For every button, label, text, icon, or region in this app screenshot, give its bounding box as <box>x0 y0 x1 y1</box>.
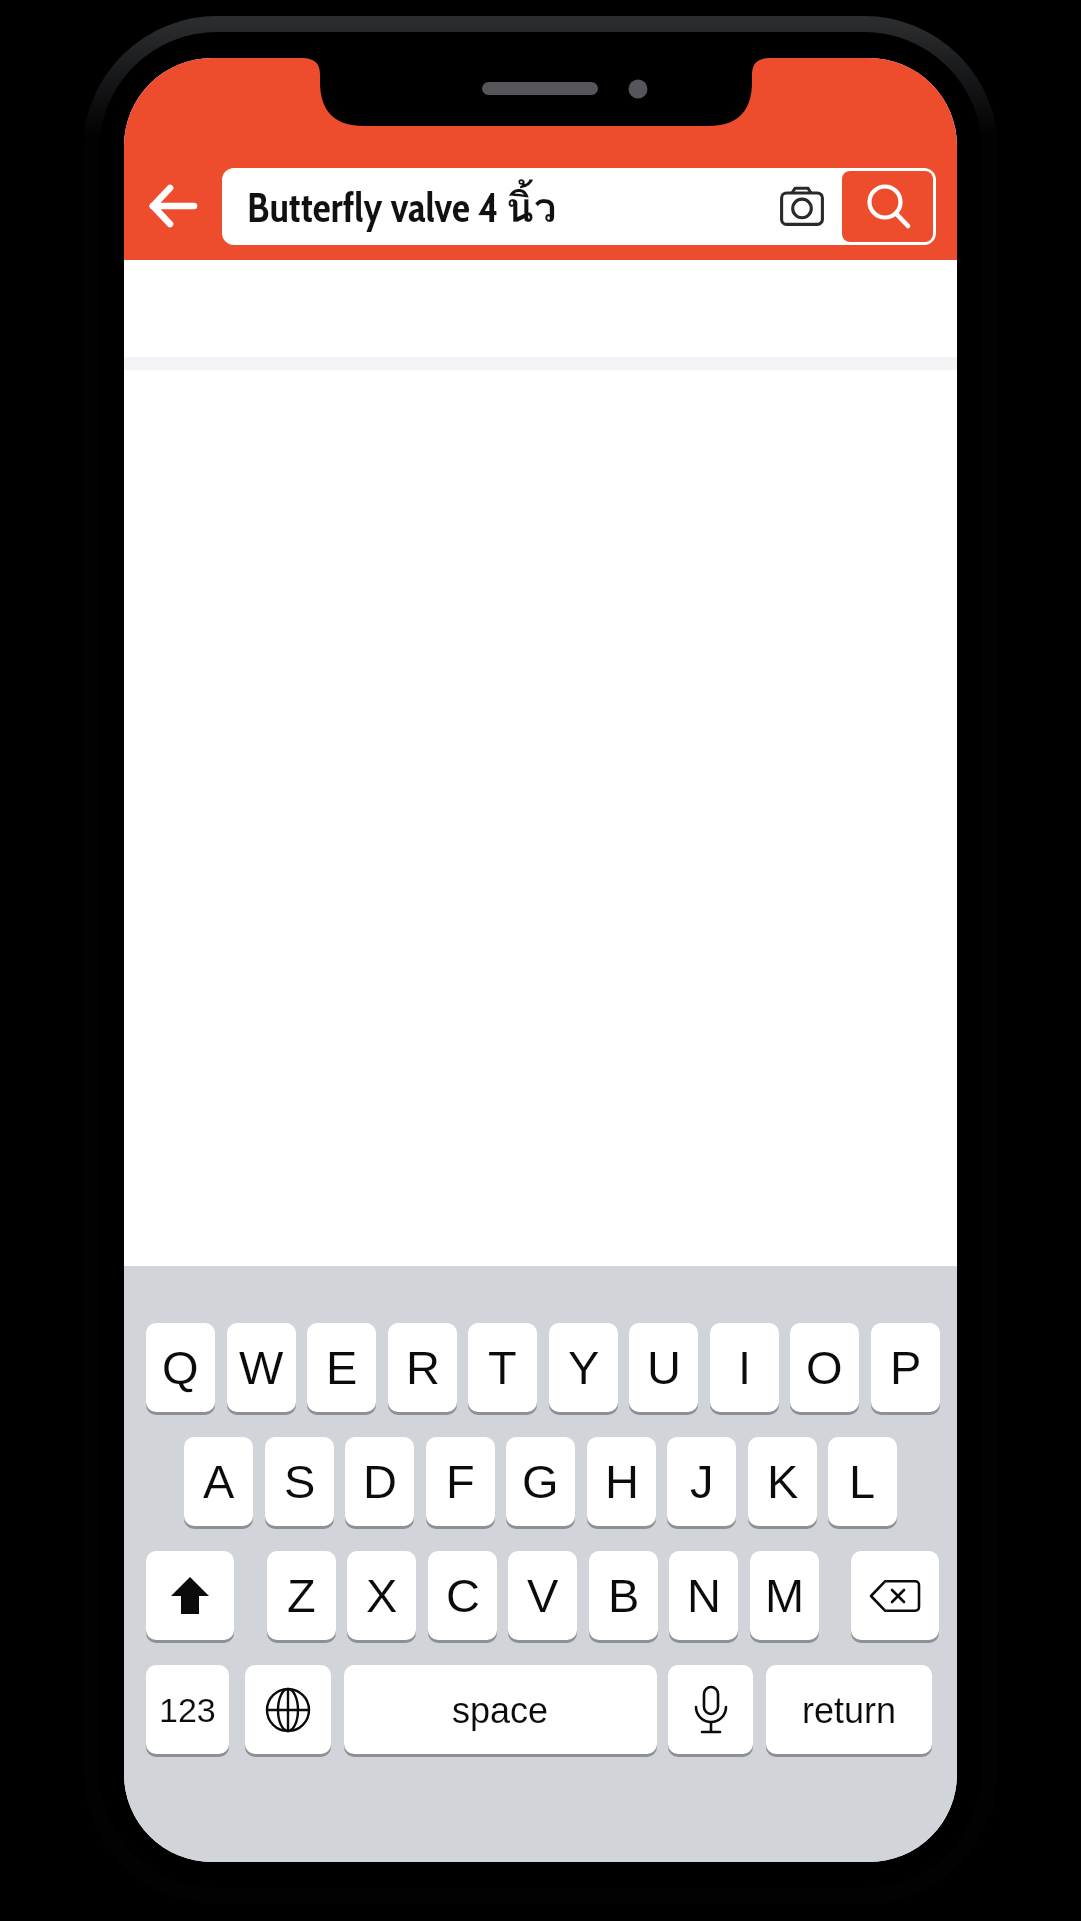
staticText: M <box>765 1569 805 1622</box>
button[interactable]: O <box>790 1323 859 1412</box>
button[interactable]: J <box>667 1437 736 1526</box>
button[interactable]: 123 <box>146 1665 229 1754</box>
staticText: A <box>203 1455 235 1508</box>
button[interactable]: Butterfly valve 4 นิ้ว <box>222 168 936 245</box>
staticText: H <box>605 1455 639 1508</box>
button[interactable] <box>768 176 836 236</box>
staticText: C <box>446 1569 480 1622</box>
staticText: U <box>647 1341 681 1394</box>
button[interactable]: A <box>184 1437 253 1526</box>
button[interactable]: K <box>748 1437 817 1526</box>
button[interactable]: U <box>629 1323 698 1412</box>
staticText: F <box>446 1455 475 1508</box>
staticText: Q <box>162 1341 199 1394</box>
staticText: I <box>738 1341 752 1394</box>
button[interactable]: Y <box>549 1323 618 1412</box>
staticText: return <box>802 1690 897 1730</box>
button[interactable]: S <box>265 1437 334 1526</box>
button[interactable]: I <box>710 1323 779 1412</box>
button[interactable] <box>132 164 214 248</box>
staticText: T <box>488 1341 517 1394</box>
button[interactable]: M <box>750 1551 819 1640</box>
button[interactable]: G <box>506 1437 575 1526</box>
button[interactable]: space <box>344 1665 657 1754</box>
staticText: 123 <box>159 1691 216 1729</box>
staticText: J <box>690 1455 714 1508</box>
button[interactable]: H <box>587 1437 656 1526</box>
button[interactable]: return <box>766 1665 932 1754</box>
staticText: D <box>363 1455 397 1508</box>
button[interactable] <box>851 1551 939 1640</box>
button[interactable]: R <box>388 1323 457 1412</box>
button[interactable]: N <box>669 1551 738 1640</box>
staticText: R <box>406 1341 440 1394</box>
button[interactable]: L <box>828 1437 897 1526</box>
staticText: L <box>849 1455 876 1508</box>
button[interactable] <box>245 1665 331 1754</box>
button[interactable]: Q <box>146 1323 215 1412</box>
staticText: X <box>366 1569 398 1622</box>
staticText: K <box>767 1455 799 1508</box>
button[interactable] <box>146 1551 234 1640</box>
staticText: V <box>527 1569 559 1622</box>
staticText: W <box>239 1341 284 1394</box>
staticText: P <box>890 1341 922 1394</box>
button[interactable] <box>668 1665 753 1754</box>
staticText: B <box>608 1569 640 1622</box>
button[interactable]: P <box>871 1323 940 1412</box>
staticText: E <box>326 1341 358 1394</box>
staticText: Butterfly valve 4 นิ้ว <box>247 175 557 239</box>
button[interactable] <box>842 171 933 242</box>
button[interactable]: B <box>589 1551 658 1640</box>
button[interactable]: X <box>347 1551 416 1640</box>
button[interactable]: D <box>345 1437 414 1526</box>
staticText: space <box>452 1690 549 1730</box>
staticText: Y <box>568 1341 600 1394</box>
button[interactable]: Z <box>267 1551 336 1640</box>
staticText: Z <box>287 1569 316 1622</box>
button[interactable]: V <box>508 1551 577 1640</box>
button[interactable]: T <box>468 1323 537 1412</box>
button[interactable]: C <box>428 1551 497 1640</box>
staticText: N <box>687 1569 721 1622</box>
staticText: G <box>522 1455 559 1508</box>
staticText: S <box>284 1455 316 1508</box>
button[interactable]: F <box>426 1437 495 1526</box>
button[interactable]: E <box>307 1323 376 1412</box>
staticText: O <box>806 1341 843 1394</box>
button[interactable]: W <box>227 1323 296 1412</box>
